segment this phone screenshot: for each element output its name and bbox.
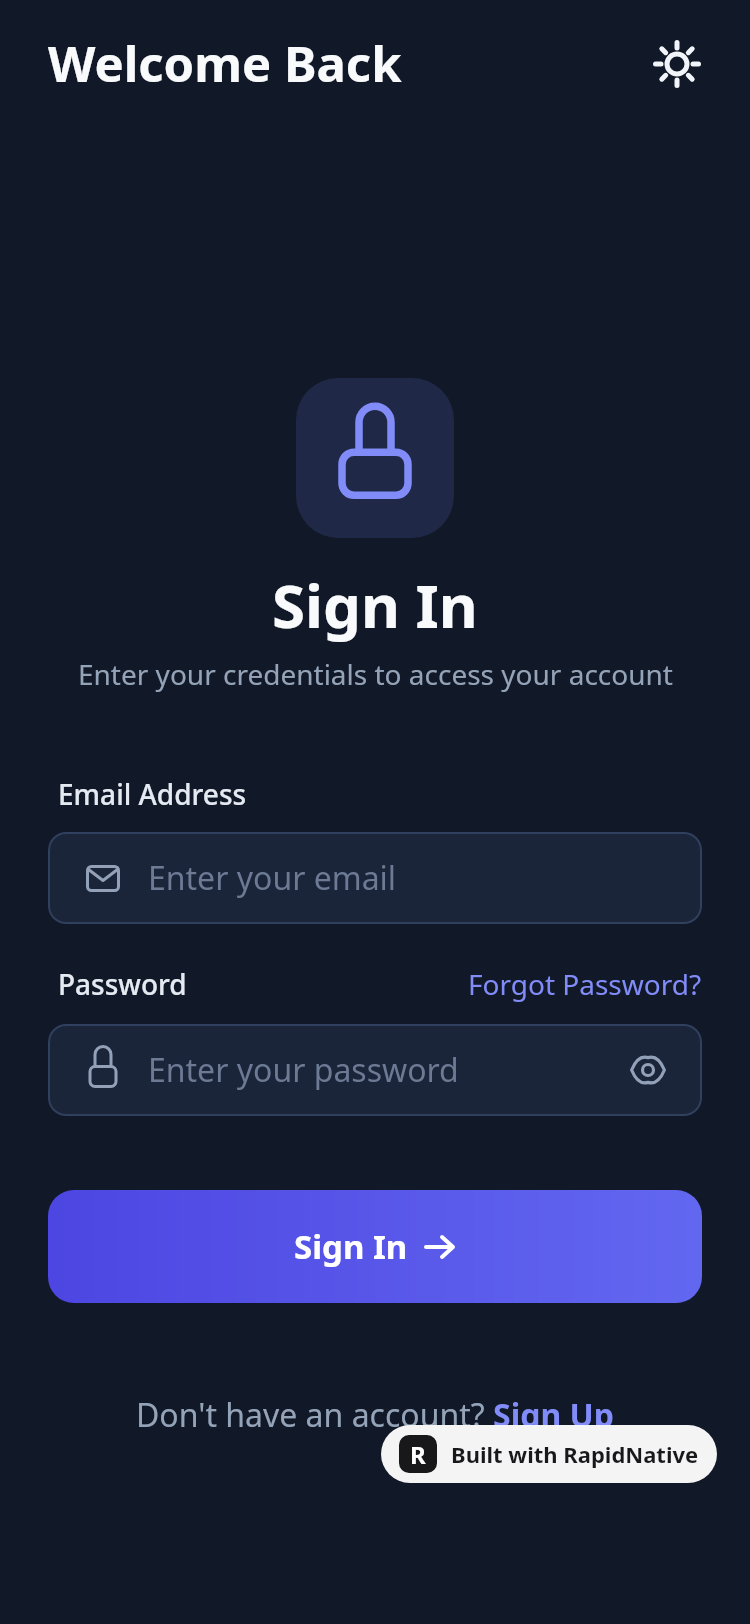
button[interactable]: Forgot Password? [468, 965, 702, 1003]
staticText: Enter your credentials to access your ac… [78, 655, 673, 693]
button[interactable] [628, 1050, 668, 1090]
staticText: Password [58, 965, 187, 1003]
staticText: Enter your email [148, 856, 397, 900]
staticText: Welcome Back [48, 30, 402, 97]
staticText: Sign In [294, 1224, 408, 1269]
staticText: Enter your password [148, 1048, 459, 1092]
staticText: Email Address [58, 775, 247, 813]
staticText: Don't have an account? [136, 1393, 493, 1437]
button[interactable] [653, 40, 701, 88]
button[interactable]: Enter your email [48, 832, 702, 924]
button[interactable]: Don't have an account? [0, 1393, 750, 1437]
button[interactable]: Sign In [48, 1190, 702, 1303]
staticText: Sign Up [493, 1393, 614, 1437]
button[interactable]: Enter your password [48, 1024, 702, 1116]
staticText: R [410, 1438, 426, 1471]
staticText: Sign In [272, 564, 478, 646]
staticText: Built with RapidNative [451, 1439, 699, 1469]
button[interactable]: R [381, 1425, 717, 1483]
